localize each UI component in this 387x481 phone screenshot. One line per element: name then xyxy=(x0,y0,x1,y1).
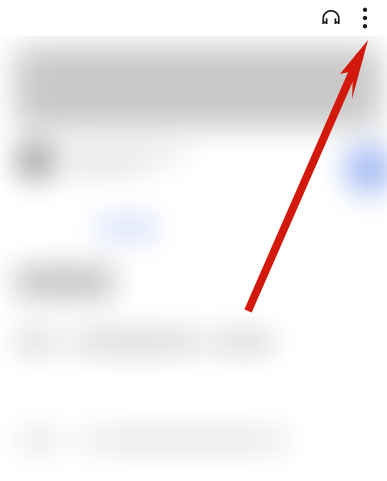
button[interactable]: More options xyxy=(348,1,382,35)
button[interactable]: Listen to article xyxy=(314,1,348,35)
